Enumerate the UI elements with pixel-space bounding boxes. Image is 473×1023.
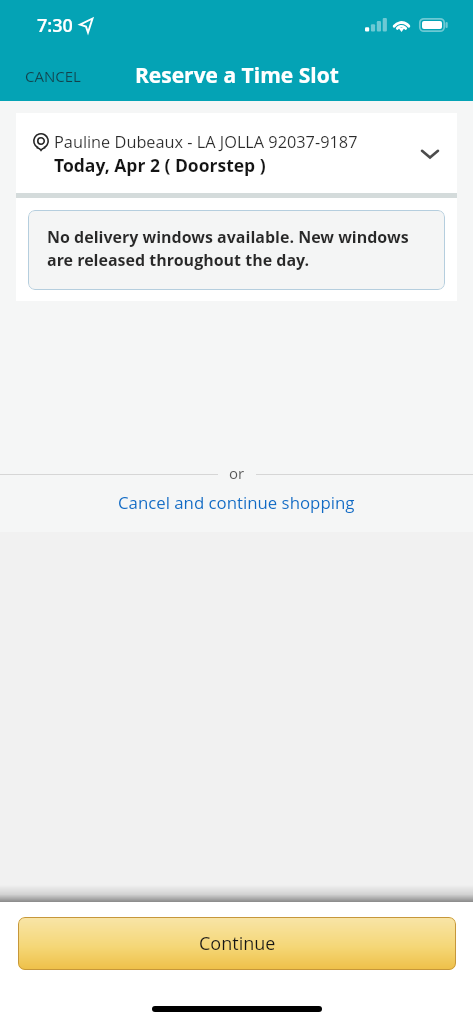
staticText: or [229, 463, 245, 483]
staticText: CANCEL [25, 66, 81, 86]
staticText: Today, Apr 2 ( Doorstep ) [54, 153, 266, 177]
staticText: 7:30 [37, 13, 73, 38]
staticText: Continue [199, 931, 276, 956]
staticText: No delivery windows available. New windo… [47, 226, 431, 271]
button[interactable]: Cancel and continue shopping [0, 488, 473, 517]
button[interactable]: Expand address [415, 139, 445, 169]
staticText: Reserve a Time Slot [135, 61, 339, 90]
staticText: Pauline Dubeaux - LA JOLLA 92037-9187 [54, 131, 358, 153]
staticText: Cancel and continue shopping [118, 491, 355, 514]
button[interactable]: Pauline Dubeaux - LA JOLLA 92037-9187 [16, 113, 457, 193]
button[interactable]: Continue [18, 917, 456, 970]
button[interactable]: CANCEL [0, 56, 106, 96]
